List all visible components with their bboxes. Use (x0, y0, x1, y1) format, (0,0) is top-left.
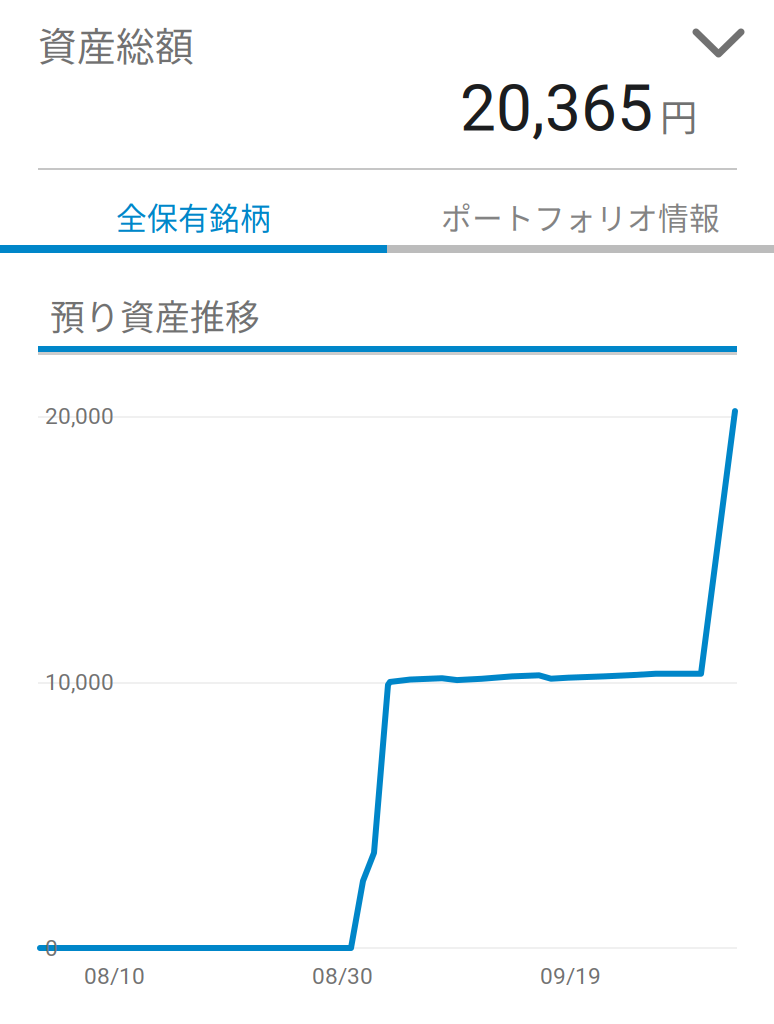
staticText: 08/30 (312, 963, 373, 990)
staticText: 08/10 (84, 963, 145, 990)
button[interactable]: Collapse total assets (680, 16, 757, 70)
staticText: 09/19 (540, 963, 601, 990)
staticText: ポートフォリオ情報 (441, 194, 720, 239)
staticText: 10,000 (45, 669, 114, 696)
staticText: 預り資産推移 (50, 290, 260, 340)
button[interactable]: 全保有銘柄 (0, 189, 387, 244)
staticText: 円 (660, 88, 697, 142)
button[interactable]: ポートフォリオ情報 (387, 189, 774, 244)
staticText: 全保有銘柄 (116, 194, 271, 239)
staticText: 資産総額 (38, 16, 194, 72)
staticText: 0 (45, 935, 58, 962)
staticText: 20,000 (45, 403, 114, 430)
staticText: 20,365 (460, 71, 653, 146)
